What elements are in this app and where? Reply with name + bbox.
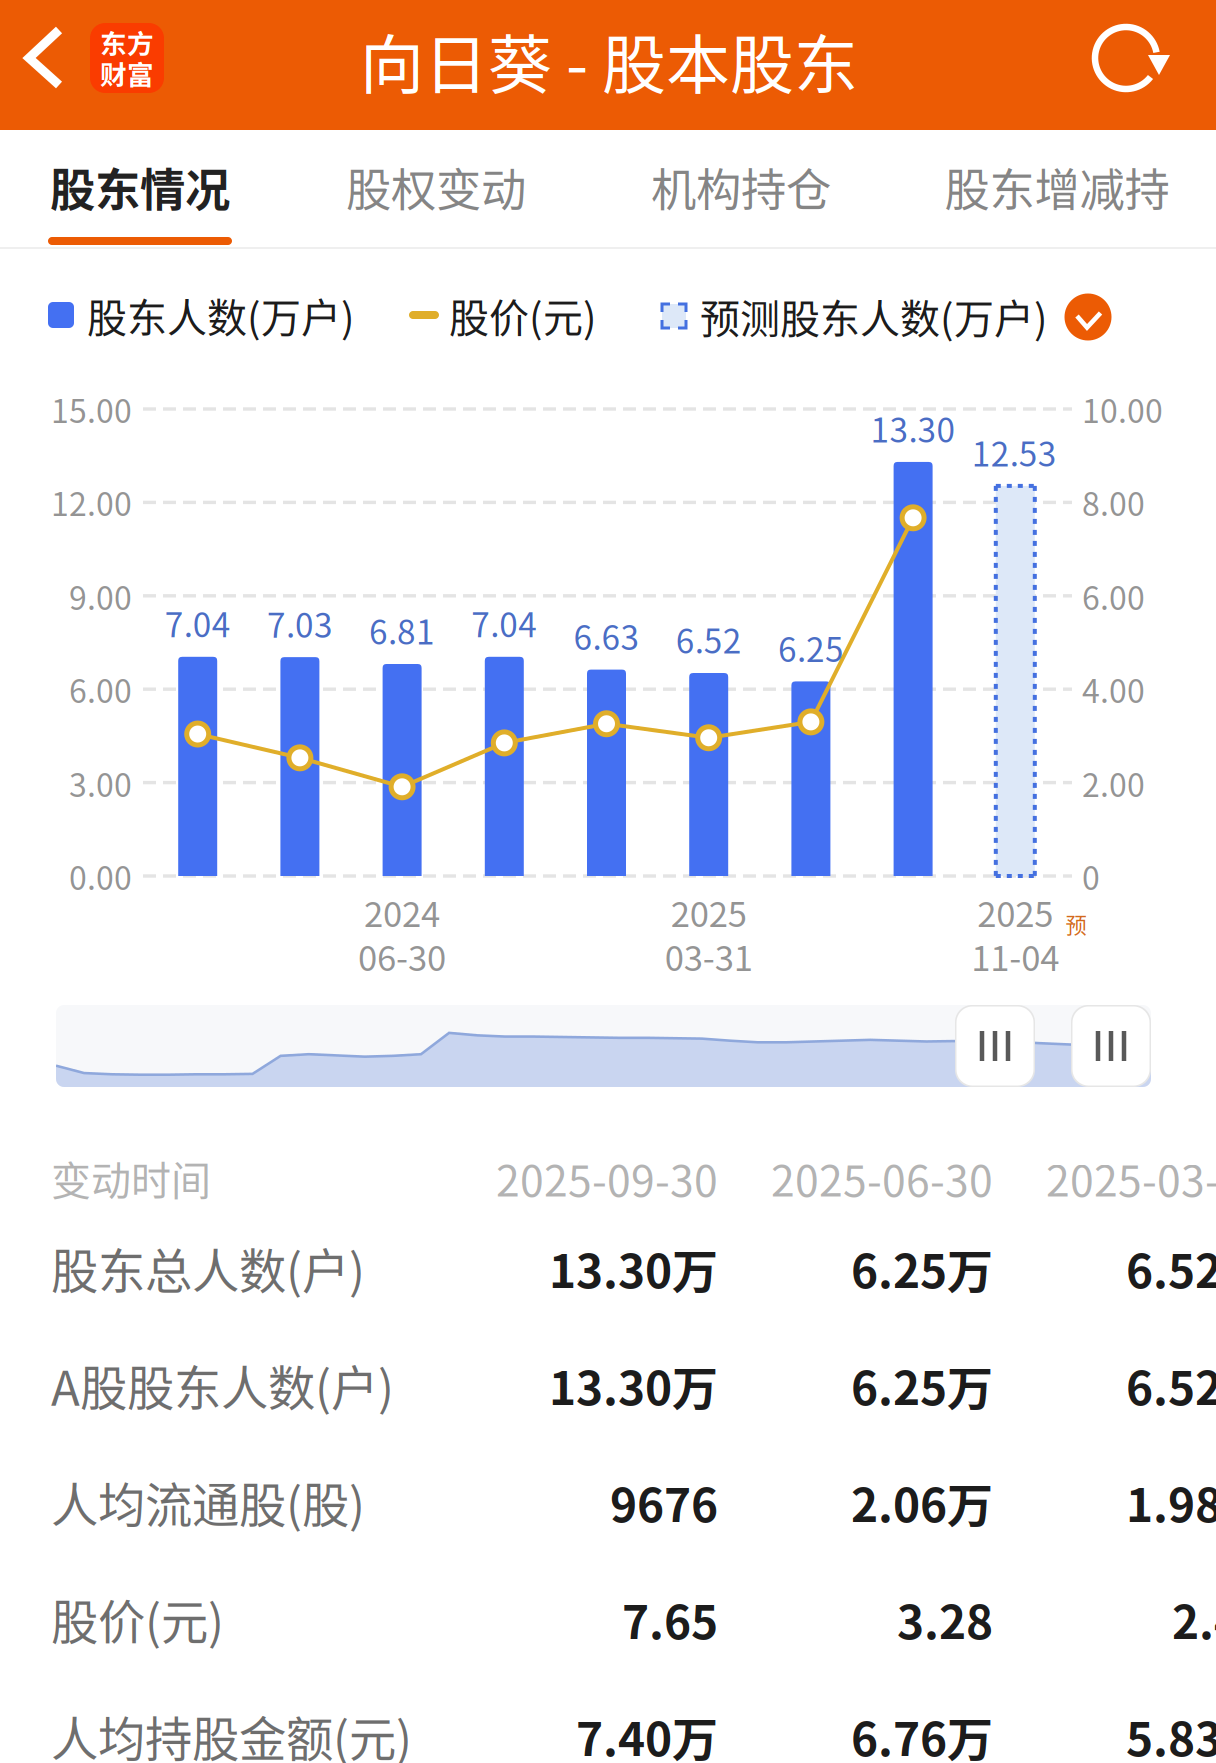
staticText: 2025	[671, 887, 747, 937]
staticText: 股权变动	[346, 154, 526, 220]
staticText: 股东增减持	[944, 154, 1169, 220]
staticText: 人均流通股(股)	[51, 1468, 365, 1536]
staticText: 15.00	[51, 386, 132, 432]
staticText: 13.30万	[549, 1352, 718, 1418]
button[interactable]: 股东增减持	[944, 132, 1169, 242]
button[interactable]: Range end	[1071, 1005, 1151, 1087]
button[interactable]: Back	[0, 0, 186, 130]
staticText: 变动时间	[51, 1149, 211, 1207]
staticText: 2024	[364, 887, 440, 937]
staticText: 向日葵 - 股本股东	[360, 14, 858, 106]
button[interactable]: Toggle forecast	[1064, 293, 1111, 340]
staticText: 6.25万	[851, 1235, 993, 1301]
staticText: 6.00	[1082, 573, 1145, 619]
staticText: 预测股东人数(万户)	[700, 287, 1048, 345]
staticText: 13.30	[871, 404, 956, 452]
staticText: 股东总人数(户)	[51, 1234, 365, 1302]
staticText: 股东人数(万户)	[87, 286, 355, 344]
staticText: 03-31	[665, 931, 753, 981]
staticText: 财富	[100, 54, 154, 92]
staticText: 人均持股金额(元)	[51, 1702, 412, 1763]
staticText: 股价(元)	[449, 286, 597, 344]
staticText: 6.52万	[1126, 1352, 1216, 1418]
staticText: 1.98万	[1126, 1469, 1216, 1535]
button[interactable]: 股东情况	[50, 132, 230, 242]
staticText: 股价(元)	[51, 1585, 224, 1653]
staticText: 8.00	[1082, 479, 1145, 525]
staticText: 10.00	[1082, 386, 1163, 432]
staticText: 13.30万	[549, 1235, 718, 1301]
button[interactable]: 机构持仓	[651, 132, 831, 242]
staticText: 2025-06-30	[771, 1147, 993, 1209]
staticText: 6.52	[676, 615, 742, 663]
staticText: 6.25万	[851, 1352, 993, 1418]
staticText: 0.00	[69, 853, 132, 899]
staticText: 6.63	[573, 611, 639, 660]
staticText: 6.25	[778, 623, 844, 672]
staticText: 4.00	[1082, 666, 1145, 712]
staticText: A股股东人数(户)	[51, 1351, 394, 1419]
staticText: 7.04	[165, 599, 231, 647]
staticText: 11-04	[971, 931, 1059, 981]
staticText: 5.83万	[1126, 1703, 1216, 1763]
staticText: 6.81	[369, 606, 435, 654]
staticText: 6.00	[69, 666, 132, 712]
button[interactable]: Range start	[955, 1005, 1035, 1087]
staticText: 12.53	[972, 428, 1057, 476]
staticText: 9676	[610, 1469, 718, 1535]
staticText: 7.04	[471, 599, 537, 647]
staticText: 12.00	[51, 479, 132, 525]
button[interactable]: 股权变动	[346, 132, 526, 242]
staticText: 6.52万	[1126, 1235, 1216, 1301]
staticText: 2.00	[1082, 760, 1145, 806]
staticText: 6.76万	[851, 1703, 993, 1763]
staticText: 9.00	[69, 573, 132, 619]
staticText: 预	[1065, 909, 1086, 939]
staticText: 2025-09-30	[496, 1147, 718, 1209]
button[interactable]: Time range	[56, 1005, 1151, 1087]
staticText: 3.28	[897, 1586, 993, 1652]
staticText: 2025	[977, 887, 1053, 937]
staticText: 06-30	[358, 931, 446, 981]
button[interactable]: Refresh	[1058, 0, 1188, 130]
staticText: 0	[1082, 853, 1100, 899]
staticText: 2025-03-31	[1046, 1147, 1216, 1209]
staticText: 7.65	[622, 1586, 718, 1652]
staticText: 7.40万	[576, 1703, 718, 1763]
staticText: 机构持仓	[651, 154, 831, 220]
staticText: 2.41	[1172, 1586, 1216, 1652]
staticText: 2.06万	[851, 1469, 993, 1535]
staticText: 东方	[100, 23, 154, 61]
staticText: 3.00	[69, 760, 132, 806]
staticText: 7.03	[267, 599, 333, 647]
staticText: 股东情况	[50, 154, 230, 220]
